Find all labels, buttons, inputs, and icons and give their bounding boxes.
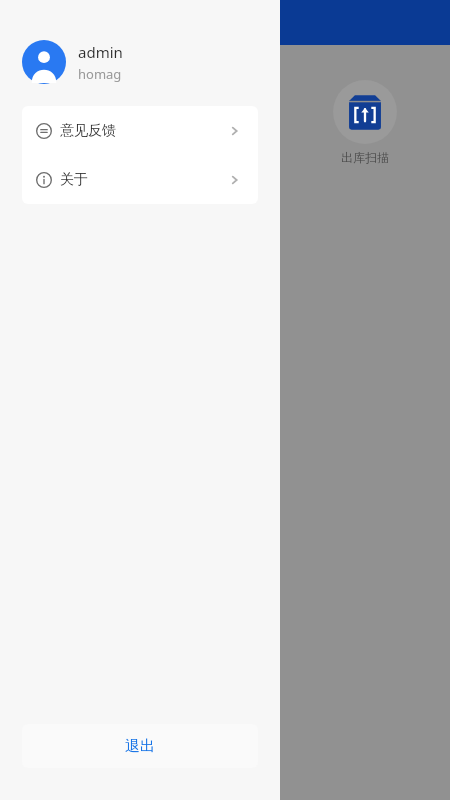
button[interactable]: 退出: [22, 724, 258, 768]
other: 出库扫描: [344, 91, 386, 133]
button[interactable]: 关于: [22, 155, 258, 204]
button[interactable]: 意见反馈: [22, 106, 258, 155]
button[interactable]: admin: [22, 40, 258, 84]
staticText: homag: [78, 65, 122, 83]
staticText: 退出: [125, 737, 155, 756]
staticText: 出库扫描: [341, 150, 389, 165]
staticText: admin: [78, 42, 123, 62]
staticText: 意见反馈: [60, 122, 116, 140]
staticText: 关于: [60, 171, 88, 189]
button[interactable]: 出库扫描: [280, 80, 450, 165]
